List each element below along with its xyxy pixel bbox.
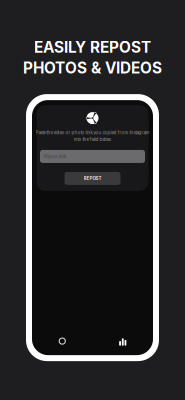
button[interactable]: REPOST bbox=[64, 172, 120, 185]
button[interactable]: Stats bbox=[92, 337, 153, 346]
staticText: PHOTOS & VIDEOS bbox=[23, 59, 162, 77]
button[interactable]: Search bbox=[32, 337, 92, 346]
staticText: Paste link bbox=[44, 153, 67, 159]
staticText: into the field below. bbox=[73, 137, 111, 142]
staticText: Paste the video or photo link you copied… bbox=[35, 130, 149, 135]
staticText: REPOST bbox=[83, 176, 101, 181]
staticText: EASILY REPOST bbox=[34, 38, 151, 57]
